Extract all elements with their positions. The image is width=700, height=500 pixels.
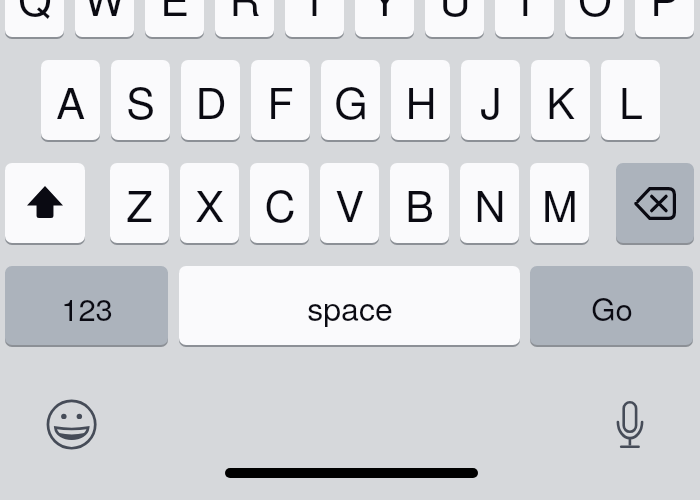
button[interactable]: Y	[355, 0, 414, 37]
staticText: I	[519, 0, 531, 29]
button[interactable]: 123	[5, 266, 168, 345]
button[interactable]: S	[111, 60, 170, 140]
staticText: U	[439, 0, 471, 29]
staticText: Y	[370, 0, 399, 29]
staticText: K	[546, 70, 575, 132]
staticText: F	[267, 70, 294, 132]
button[interactable]: R	[215, 0, 274, 37]
staticText: C	[264, 173, 296, 235]
button[interactable]: C	[250, 163, 309, 243]
staticText: Z	[126, 173, 153, 235]
staticText: space	[307, 284, 393, 330]
button[interactable]: Z	[110, 163, 169, 243]
button[interactable]: L	[601, 60, 660, 140]
staticText: E	[160, 0, 189, 29]
staticText: J	[480, 70, 502, 132]
button[interactable]: A	[41, 60, 100, 140]
button[interactable]: O	[565, 0, 624, 37]
button[interactable]: U	[425, 0, 484, 37]
button[interactable]: E	[145, 0, 204, 37]
button[interactable]: M	[530, 163, 589, 243]
button[interactable]: T	[285, 0, 344, 37]
button[interactable]: space	[179, 266, 520, 345]
button[interactable]: K	[531, 60, 590, 140]
button[interactable]: B	[390, 163, 449, 243]
staticText: X	[195, 173, 224, 235]
button[interactable]: V	[320, 163, 379, 243]
staticText: O	[578, 0, 612, 29]
staticText: P	[650, 0, 679, 29]
staticText: S	[126, 70, 155, 132]
button[interactable]: F	[251, 60, 310, 140]
staticText: 123	[61, 285, 113, 329]
button[interactable]: W	[75, 0, 134, 37]
staticText: H	[405, 70, 437, 132]
staticText: V	[335, 173, 364, 235]
button[interactable]: Backspace	[616, 163, 694, 243]
button[interactable]: Go	[530, 266, 693, 345]
staticText: G	[334, 70, 368, 132]
staticText: Go	[591, 285, 633, 329]
staticText: R	[229, 0, 261, 29]
button[interactable]: D	[181, 60, 240, 140]
staticText: Q	[18, 0, 52, 29]
staticText: W	[84, 0, 125, 29]
staticText: M	[542, 173, 578, 235]
button[interactable]: Voice input	[610, 396, 650, 452]
button[interactable]: X	[180, 163, 239, 243]
button[interactable]: G	[321, 60, 380, 140]
button[interactable]: Q	[5, 0, 64, 37]
button[interactable]: J	[461, 60, 520, 140]
staticText: N	[474, 173, 506, 235]
button[interactable]: Shift	[5, 163, 85, 243]
button[interactable]: P	[635, 0, 694, 37]
button[interactable]: H	[391, 60, 450, 140]
staticText: B	[405, 173, 434, 235]
staticText: L	[619, 70, 643, 132]
button[interactable]: N	[460, 163, 519, 243]
staticText: D	[195, 70, 227, 132]
staticText: A	[56, 70, 85, 132]
button[interactable]: I	[495, 0, 554, 37]
button[interactable]: Emoji	[44, 397, 100, 453]
staticText: T	[301, 0, 328, 29]
